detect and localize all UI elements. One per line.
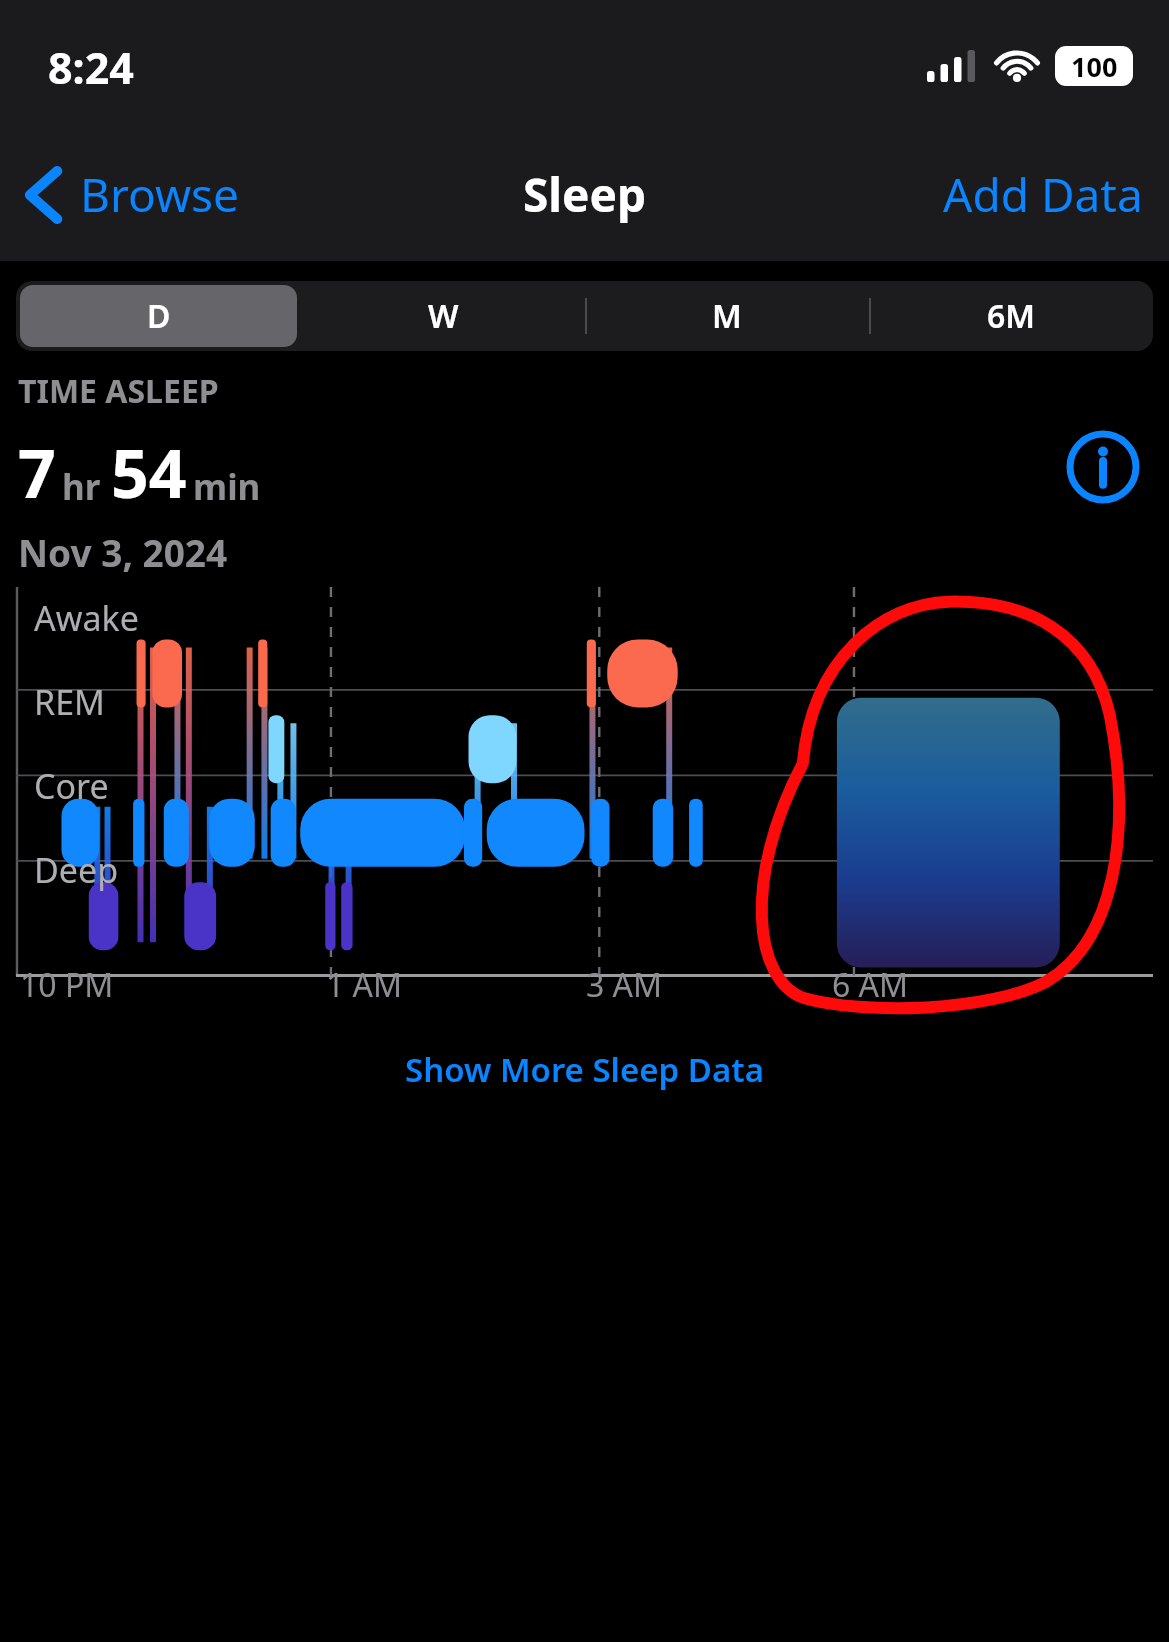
- button[interactable]: Browse: [0, 163, 248, 226]
- staticText: 6 AM: [832, 963, 909, 1007]
- button[interactable]: About time asleep: [1063, 427, 1143, 507]
- staticText: hr: [62, 463, 101, 511]
- staticText: Add Data: [943, 163, 1143, 226]
- staticText: W: [428, 294, 459, 338]
- button[interactable]: M: [589, 285, 865, 347]
- button[interactable]: W: [305, 285, 581, 347]
- staticText: REM: [34, 679, 105, 725]
- staticText: Deep: [34, 847, 119, 893]
- staticText: TIME ASLEEP: [18, 369, 219, 413]
- staticText: 8:24: [48, 38, 134, 97]
- staticText: Awake: [34, 595, 139, 641]
- button[interactable]: D: [20, 285, 297, 347]
- button[interactable]: 6M: [873, 285, 1149, 347]
- staticText: 10 PM: [20, 963, 114, 1007]
- staticText: M: [712, 294, 742, 338]
- staticText: 1 AM: [326, 963, 403, 1007]
- button[interactable]: Show More Sleep Data: [0, 1047, 1169, 1092]
- staticText: min: [193, 463, 261, 511]
- staticText: Sleep: [523, 163, 647, 226]
- staticText: Show More Sleep Data: [405, 1047, 764, 1092]
- staticText: Browse: [80, 163, 240, 226]
- staticText: Nov 3, 2024: [18, 527, 228, 577]
- staticText: 3 AM: [586, 963, 663, 1007]
- staticText: 7: [18, 427, 56, 517]
- staticText: 100: [1071, 48, 1118, 85]
- staticText: D: [147, 294, 171, 338]
- button[interactable]: Add Data: [943, 163, 1169, 226]
- staticText: 6M: [987, 294, 1036, 338]
- staticText: Core: [34, 763, 109, 809]
- staticText: 54: [111, 427, 187, 517]
